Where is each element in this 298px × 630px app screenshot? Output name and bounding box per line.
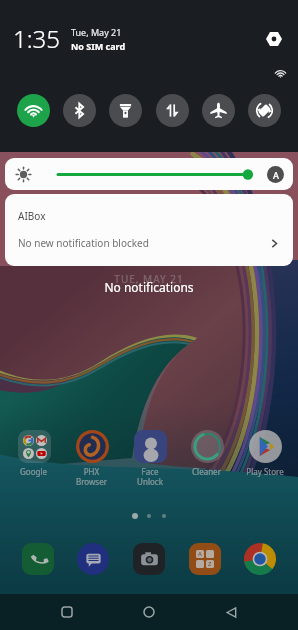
button[interactable]: Home <box>134 597 164 627</box>
staticText: Play Store <box>246 466 284 477</box>
button[interactable]: AIBox <box>5 194 293 266</box>
button[interactable]: Camera <box>129 539 169 579</box>
staticText: PHX Browser <box>76 466 107 487</box>
staticText: Google <box>20 466 47 477</box>
button[interactable]: Brightness <box>5 158 293 190</box>
button[interactable]: Auto rotate <box>248 94 281 127</box>
button[interactable]: Auto brightness <box>267 166 284 183</box>
button[interactable]: Bluetooth <box>63 94 96 127</box>
staticText: AIBox <box>18 209 46 223</box>
button[interactable]: Play Store <box>238 429 291 477</box>
staticText: A <box>198 550 202 558</box>
button[interactable]: Recents <box>52 597 82 627</box>
button[interactable]: Flashlight <box>109 94 142 127</box>
staticText: Face Unlock <box>137 466 163 487</box>
button[interactable]: Back <box>216 597 246 627</box>
staticText: No new notification blocked <box>18 236 149 250</box>
staticText: Z <box>208 560 212 568</box>
staticText: Cleaner <box>192 466 221 477</box>
staticText: 1:35 <box>13 22 60 55</box>
button[interactable]: App drawer <box>185 539 225 579</box>
button[interactable]: Wi-Fi <box>17 94 50 127</box>
button[interactable]: Settings <box>261 26 287 52</box>
staticText: No notifications <box>0 279 298 295</box>
staticText: A <box>273 169 279 181</box>
button[interactable]: Messages <box>73 539 113 579</box>
button[interactable]: Cleaner <box>180 429 233 477</box>
button[interactable]: Face Unlock <box>123 429 176 487</box>
staticText: No SIM card <box>71 40 126 52</box>
button[interactable]: Mobile data <box>156 94 189 127</box>
button[interactable]: Airplane mode <box>202 94 235 127</box>
button[interactable]: PHX Browser <box>65 429 118 487</box>
button[interactable]: Google <box>7 429 60 477</box>
button[interactable]: Chrome <box>240 539 280 579</box>
staticText: Tue, May 21 <box>71 26 122 38</box>
button[interactable]: Phone <box>18 539 58 579</box>
staticText: TUE, MAY 21 <box>0 272 298 286</box>
